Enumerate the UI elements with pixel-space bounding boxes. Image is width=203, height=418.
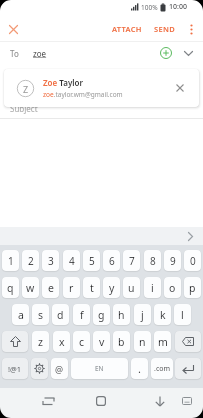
staticText: l — [181, 308, 184, 322]
button[interactable] — [159, 46, 173, 60]
staticText: t — [90, 281, 94, 295]
button[interactable]: f — [73, 304, 90, 325]
button[interactable]: 7 — [123, 250, 140, 271]
button[interactable]: l — [174, 304, 191, 325]
staticText: w — [26, 281, 35, 295]
button[interactable]: z — [32, 331, 49, 352]
button[interactable]: e — [42, 277, 59, 298]
button[interactable]: k — [154, 304, 171, 325]
staticText: .com — [154, 364, 171, 374]
button[interactable]: !@1 — [2, 358, 28, 379]
button[interactable]: .com — [151, 358, 173, 379]
button[interactable]: ATTACH — [110, 22, 144, 36]
button[interactable] — [146, 388, 174, 414]
staticText: f — [80, 308, 84, 322]
button[interactable]: 5 — [83, 250, 100, 271]
staticText: 3 — [48, 254, 54, 268]
staticText: 0 — [190, 254, 196, 268]
button[interactable]: r — [63, 277, 80, 298]
staticText: EN — [95, 364, 104, 373]
staticText: Subject — [10, 103, 38, 114]
staticText: . — [138, 361, 141, 376]
button[interactable]: 3 — [42, 250, 59, 271]
button[interactable]: s — [32, 304, 49, 325]
button[interactable]: u — [123, 277, 140, 298]
staticText: j — [141, 308, 144, 322]
staticText: k — [160, 308, 166, 322]
button[interactable]: g — [93, 304, 110, 325]
staticText: o — [169, 281, 176, 295]
button[interactable]: m — [154, 331, 171, 352]
button[interactable]: 8 — [144, 250, 161, 271]
staticText: b — [118, 335, 125, 349]
button[interactable]: EN — [71, 358, 128, 379]
button[interactable] — [2, 331, 28, 352]
staticText: SEND — [154, 24, 175, 34]
button[interactable] — [175, 358, 201, 379]
button[interactable] — [185, 23, 197, 35]
button[interactable] — [184, 230, 196, 242]
button[interactable]: b — [113, 331, 130, 352]
staticText: 8 — [150, 254, 156, 268]
button[interactable]: j — [134, 304, 151, 325]
staticText: 1 — [8, 254, 14, 268]
button[interactable]: @ — [51, 358, 68, 379]
button[interactable]: h — [113, 304, 130, 325]
staticText: d — [57, 308, 64, 322]
staticText: g — [98, 308, 105, 322]
button[interactable]: To — [0, 42, 203, 64]
button[interactable]: a — [12, 304, 29, 325]
button[interactable]: 4 — [63, 250, 80, 271]
staticText: Z — [23, 83, 29, 95]
staticText: u — [128, 281, 135, 295]
staticText: zoe.taylor.wm@gmail.com — [43, 90, 123, 99]
button[interactable]: x — [53, 331, 70, 352]
button[interactable]: n — [134, 331, 151, 352]
button[interactable]: 6 — [103, 250, 120, 271]
button[interactable]: i — [144, 277, 161, 298]
button[interactable]: 1 — [2, 250, 19, 271]
button[interactable]: t — [83, 277, 100, 298]
button[interactable]: q — [2, 277, 19, 298]
button[interactable]: o — [164, 277, 181, 298]
button[interactable]: y — [103, 277, 120, 298]
staticText: !@1 — [8, 364, 22, 374]
staticText: y — [109, 281, 115, 295]
staticText: r — [69, 281, 74, 295]
button[interactable]: c — [73, 331, 90, 352]
staticText: q — [7, 281, 14, 295]
staticText: n — [139, 335, 146, 349]
button[interactable]: SEND — [152, 22, 177, 36]
button[interactable]: p — [184, 277, 201, 298]
button[interactable] — [31, 358, 48, 379]
button[interactable]: d — [52, 304, 69, 325]
staticText: 6 — [109, 254, 115, 268]
button[interactable]: . — [131, 358, 148, 379]
button[interactable] — [182, 47, 194, 59]
staticText: 7 — [129, 254, 135, 268]
staticText: Zoe Taylor — [43, 77, 83, 88]
staticText: 100% — [141, 3, 158, 12]
button[interactable] — [87, 388, 115, 414]
button[interactable]: Z — [4, 69, 199, 107]
button[interactable]: 0 — [184, 250, 201, 271]
button[interactable] — [173, 81, 187, 95]
staticText: c — [79, 335, 85, 349]
button[interactable]: 2 — [22, 250, 39, 271]
staticText: h — [118, 308, 125, 322]
staticText: m — [158, 335, 168, 349]
button[interactable] — [5, 21, 21, 37]
staticText: @ — [55, 363, 64, 375]
staticText: e — [48, 281, 54, 295]
staticText: zoe — [33, 48, 47, 59]
staticText: s — [38, 308, 44, 322]
button[interactable]: v — [93, 331, 110, 352]
button[interactable]: 9 — [164, 250, 181, 271]
staticText: v — [99, 335, 105, 349]
button[interactable]: w — [22, 277, 39, 298]
staticText: 2 — [28, 254, 34, 268]
button[interactable] — [176, 388, 198, 414]
button[interactable] — [34, 388, 62, 414]
staticText: 9 — [170, 254, 176, 268]
button[interactable] — [175, 331, 201, 352]
